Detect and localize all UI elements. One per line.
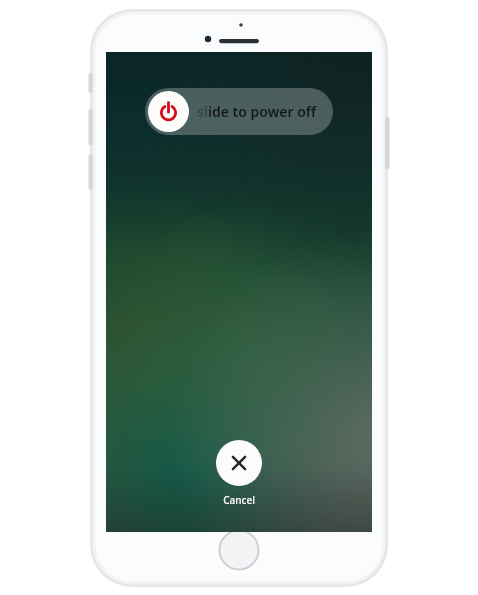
staticText: sl (197, 102, 208, 121)
staticText: ide to power off (208, 102, 317, 121)
other: Power off (148, 91, 189, 132)
button[interactable]: Power off (145, 88, 333, 135)
staticText: Cancel (223, 493, 255, 507)
button[interactable]: Cancel (216, 440, 262, 486)
